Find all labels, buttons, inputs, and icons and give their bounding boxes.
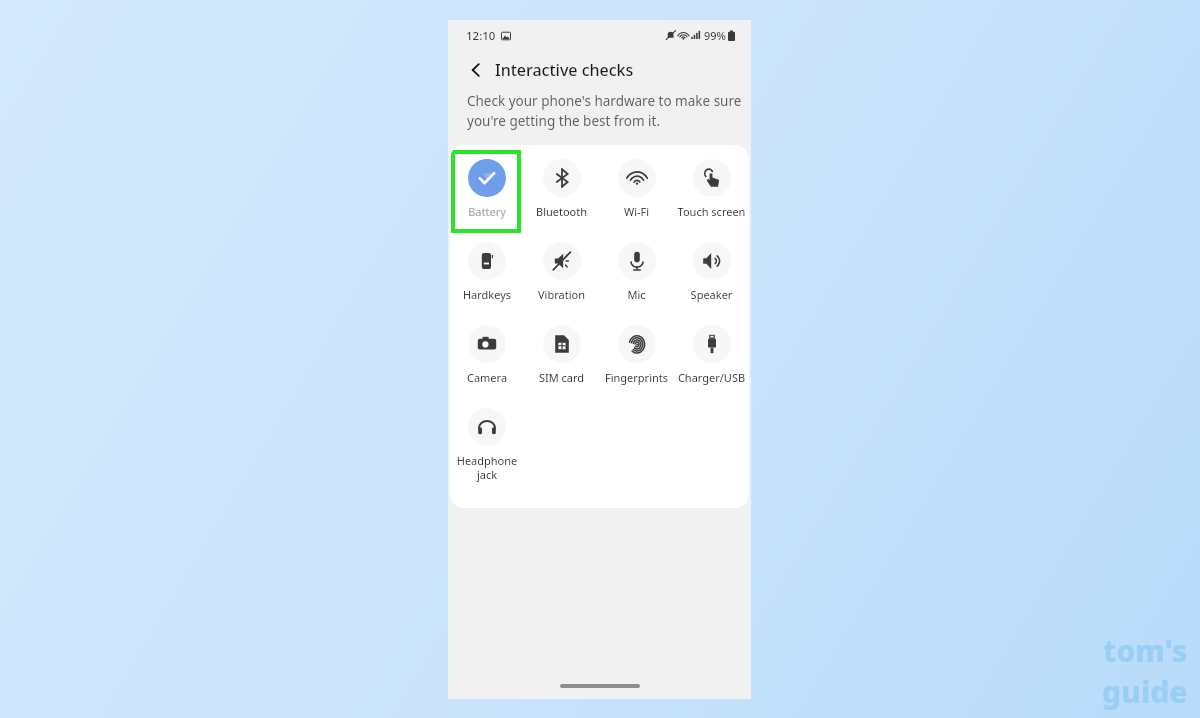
staticText: Speaker: [674, 287, 749, 302]
staticText: Charger/USB: [674, 370, 749, 385]
staticText: Camera: [450, 370, 524, 385]
staticText: Wi-Fi: [599, 204, 674, 219]
button[interactable]: Charger/USB: [674, 316, 749, 385]
button[interactable]: Wi-Fi: [599, 150, 674, 219]
button[interactable]: Hardkeys: [450, 233, 524, 302]
button[interactable]: Battery: [450, 150, 524, 219]
staticText: Headphone jack: [450, 453, 524, 482]
button[interactable]: SIM card: [524, 316, 599, 385]
staticText: Touch screen: [674, 204, 749, 219]
button[interactable]: Fingerprints: [599, 316, 674, 385]
staticText: Hardkeys: [450, 287, 524, 302]
button[interactable]: Bluetooth: [524, 150, 599, 219]
staticText: Check your phone's hardware to make sure…: [467, 92, 742, 130]
staticText: Mic: [599, 287, 674, 302]
button[interactable]: Camera: [450, 316, 524, 385]
button[interactable]: Touch screen: [674, 150, 749, 219]
button[interactable]: Vibration: [524, 233, 599, 302]
staticText: Vibration: [524, 287, 599, 302]
staticText: SIM card: [524, 370, 599, 385]
button[interactable]: Headphone jack: [450, 399, 524, 482]
staticText: Bluetooth: [524, 204, 599, 219]
staticText: 99%: [704, 28, 726, 43]
button[interactable]: Back: [463, 57, 489, 83]
staticText: 12:10: [466, 28, 496, 44]
staticText: guide: [1102, 671, 1188, 712]
button[interactable]: Speaker: [674, 233, 749, 302]
staticText: Fingerprints: [599, 370, 674, 385]
button[interactable]: Mic: [599, 233, 674, 302]
staticText: tom's: [1103, 630, 1188, 671]
staticText: Battery: [450, 204, 524, 219]
staticText: Interactive checks: [495, 59, 634, 81]
